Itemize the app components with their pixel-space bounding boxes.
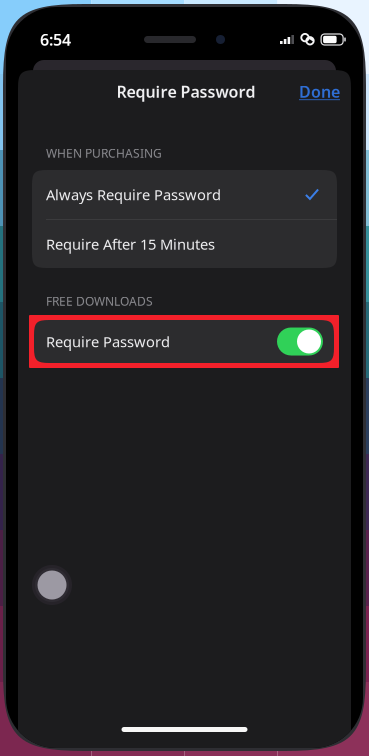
staticText: Require After 15 Minutes [46, 234, 215, 254]
button[interactable]: Require After 15 Minutes [32, 220, 337, 268]
staticText: Always Require Password [46, 185, 221, 204]
staticText: Require Password [46, 332, 170, 351]
staticText: FREE DOWNLOADS [46, 293, 153, 309]
staticText: 6:54 [40, 29, 71, 50]
button[interactable]: Always Require Password [32, 170, 337, 219]
staticText: Require Password [116, 81, 255, 102]
staticText: Done [299, 81, 340, 102]
button[interactable]: Require Password [34, 320, 334, 363]
button[interactable]: Done [292, 73, 347, 110]
staticText: WHEN PURCHASING [46, 145, 162, 161]
